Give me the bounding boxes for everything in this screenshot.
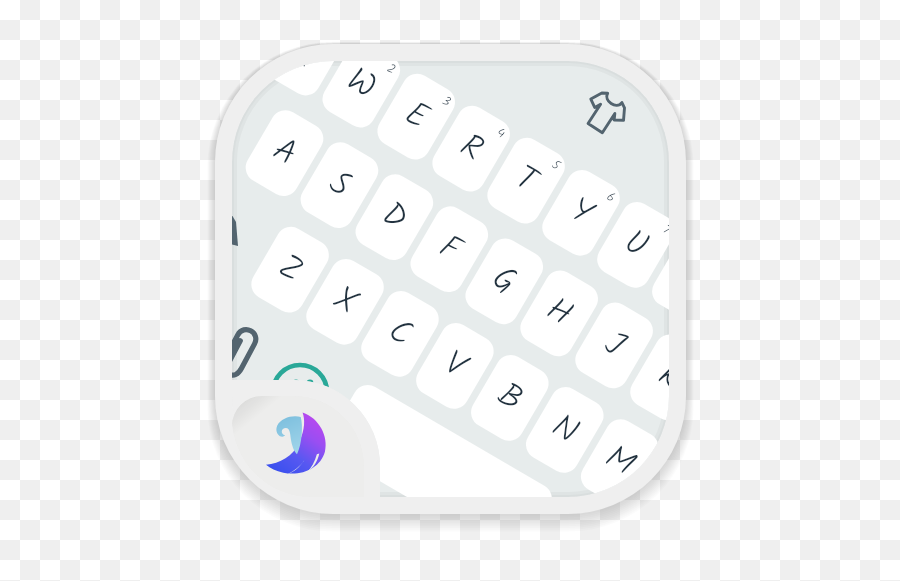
button[interactable]: Keyboard app icon [0, 0, 900, 581]
